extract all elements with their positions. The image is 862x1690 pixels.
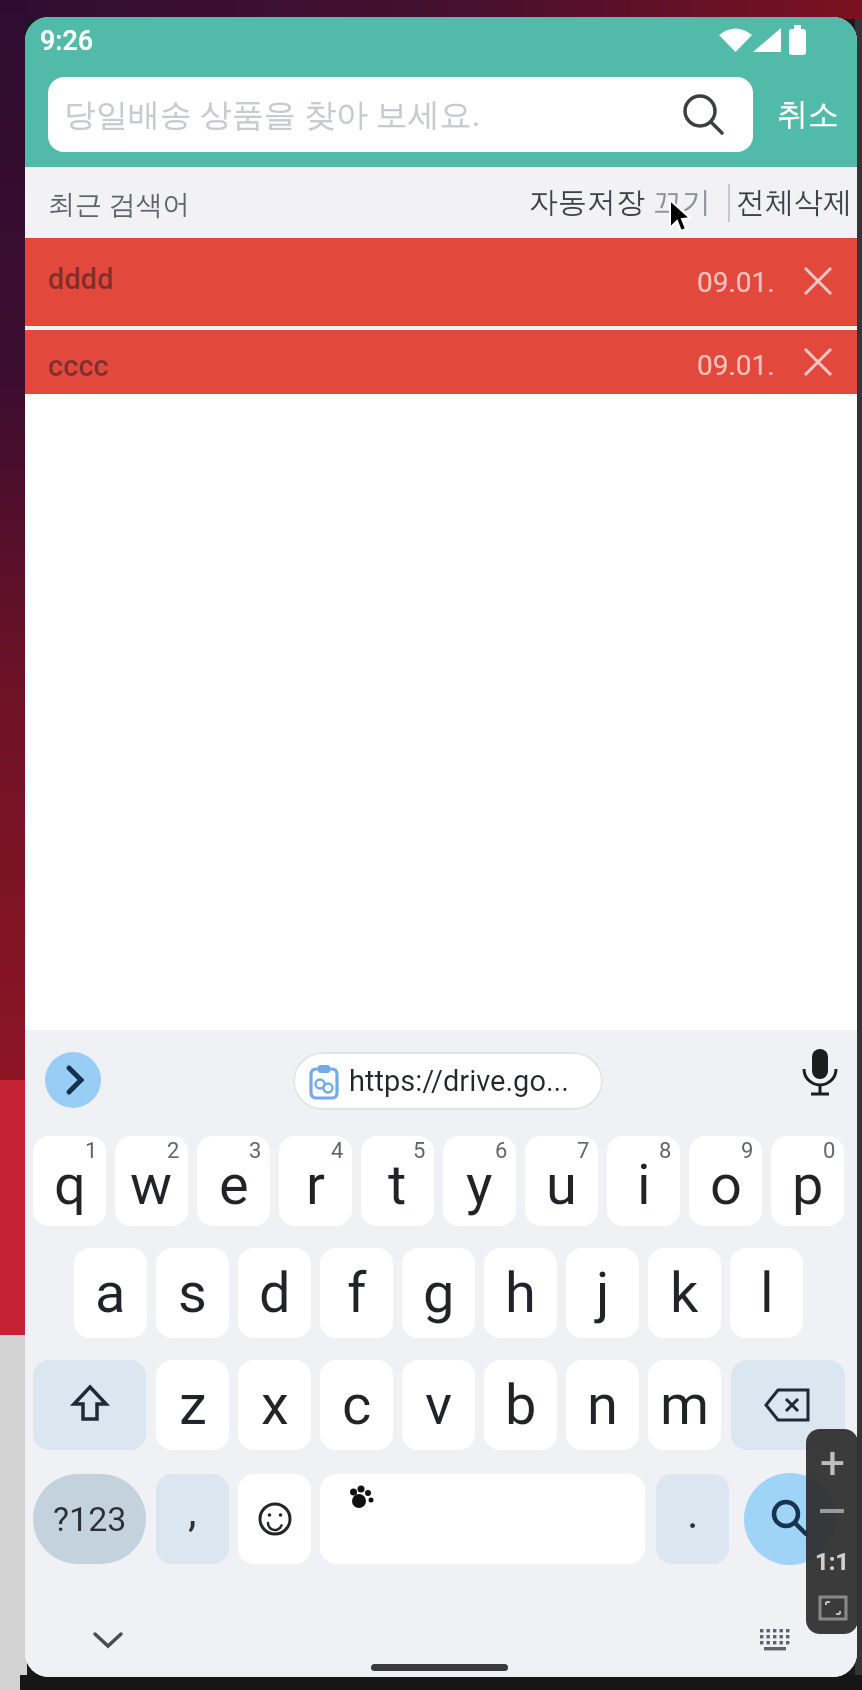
button[interactable]: v [402, 1360, 475, 1450]
staticText: 09.01. [697, 349, 775, 382]
staticText: 끄기 [653, 184, 711, 221]
staticText: 1 [85, 1138, 98, 1164]
staticText: d [259, 1260, 291, 1326]
staticText: 0 [823, 1138, 836, 1164]
button[interactable]: j [566, 1248, 639, 1338]
staticText: 7 [577, 1138, 590, 1164]
staticText: x [261, 1372, 289, 1438]
button[interactable]: 전체삭제 [730, 167, 857, 238]
button[interactable]: n [566, 1360, 639, 1450]
staticText: 당일배송 상품을 찾아 보세요. [64, 95, 481, 135]
staticText: 09.01. [697, 266, 775, 299]
button[interactable] [238, 1474, 311, 1564]
staticText: c [342, 1372, 372, 1438]
staticText: z [179, 1372, 207, 1438]
button[interactable]: b [484, 1360, 557, 1450]
button[interactable] [750, 1619, 800, 1661]
button[interactable]: https://drive.go... [293, 1052, 603, 1110]
button[interactable] [790, 248, 846, 314]
button[interactable] [795, 1045, 845, 1107]
button[interactable]: i [607, 1136, 680, 1226]
button[interactable]: h [484, 1248, 557, 1338]
staticText: 8 [659, 1138, 672, 1164]
staticText: 1:1 [815, 1548, 850, 1576]
button[interactable]: o [689, 1136, 762, 1226]
button[interactable]: g [402, 1248, 475, 1338]
staticText: r [306, 1152, 325, 1218]
staticText: i [637, 1152, 651, 1218]
staticText: dddd [48, 262, 114, 296]
button[interactable]: k [648, 1248, 721, 1338]
staticText: m [660, 1372, 710, 1438]
staticText: 3 [249, 1138, 262, 1164]
button[interactable]: . [656, 1474, 729, 1564]
staticText: q [54, 1152, 86, 1218]
staticText: y [466, 1152, 493, 1218]
staticText: ?123 [53, 1499, 127, 1539]
staticText: l [760, 1260, 774, 1326]
staticText: + [820, 1437, 845, 1481]
staticText: g [423, 1260, 455, 1326]
staticText: b [505, 1372, 537, 1438]
staticText: p [792, 1152, 824, 1218]
button[interactable] [731, 1360, 845, 1450]
button[interactable]: s [156, 1248, 229, 1338]
staticText: 전체삭제 [736, 184, 852, 221]
staticText: 최근 검색어 [48, 188, 190, 222]
button[interactable]: c [320, 1360, 393, 1450]
staticText: t [388, 1152, 407, 1218]
button[interactable] [320, 1474, 645, 1564]
staticText: 6 [495, 1138, 508, 1164]
staticText: , [188, 1485, 197, 1537]
staticText: u [546, 1152, 577, 1218]
button[interactable]: d [238, 1248, 311, 1338]
staticText: 취소 [777, 95, 839, 134]
staticText: 9:26 [40, 25, 94, 57]
button[interactable] [744, 1473, 836, 1565]
staticText: j [596, 1260, 610, 1326]
staticText: h [505, 1260, 536, 1326]
button[interactable] [25, 330, 857, 394]
staticText: s [178, 1260, 207, 1326]
staticText: 5 [413, 1138, 426, 1164]
staticText: f [347, 1260, 367, 1326]
staticText: a [95, 1260, 126, 1326]
staticText: v [425, 1372, 453, 1438]
staticText: w [130, 1152, 173, 1218]
button[interactable]: ?123 [33, 1474, 146, 1564]
button[interactable] [45, 1052, 101, 1108]
staticText: 자동저장 [529, 184, 653, 221]
staticText: 2 [167, 1138, 180, 1164]
button[interactable]: m [648, 1360, 721, 1450]
button[interactable]: l [730, 1248, 803, 1338]
staticText: o [710, 1152, 742, 1218]
button[interactable]: u [525, 1136, 598, 1226]
staticText: https://drive.go... [349, 1064, 569, 1098]
button[interactable]: a [74, 1248, 147, 1338]
button[interactable]: y [443, 1136, 516, 1226]
button[interactable]: p [771, 1136, 844, 1226]
button[interactable]: z [156, 1360, 229, 1450]
button[interactable] [790, 330, 846, 394]
button[interactable]: q [33, 1136, 106, 1226]
staticText: n [587, 1372, 618, 1438]
button[interactable]: , [156, 1474, 229, 1564]
button[interactable] [25, 238, 857, 326]
button[interactable]: 자동저장 [445, 167, 711, 238]
staticText: e [219, 1152, 249, 1218]
button[interactable]: f [320, 1248, 393, 1338]
button[interactable] [80, 1617, 136, 1663]
staticText: 9 [741, 1138, 754, 1164]
staticText: cccc [48, 349, 109, 383]
button[interactable]: r [279, 1136, 352, 1226]
staticText: k [670, 1260, 699, 1326]
button[interactable]: t [361, 1136, 434, 1226]
button[interactable]: 당일배송 상품을 찾아 보세요. [48, 77, 753, 152]
button[interactable]: w [115, 1136, 188, 1226]
button[interactable]: x [238, 1360, 311, 1450]
staticText: 4 [331, 1138, 344, 1164]
button[interactable]: e [197, 1136, 270, 1226]
staticText: . [687, 1487, 699, 1539]
button[interactable] [33, 1360, 146, 1450]
